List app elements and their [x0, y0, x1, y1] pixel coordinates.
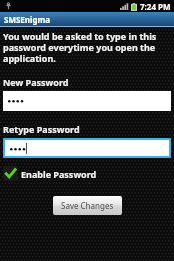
staticText: 7:24 PM — [140, 1, 171, 12]
staticText: SMSEnigma — [4, 14, 51, 25]
button[interactable]: Retype Password — [5, 140, 169, 156]
staticText: Retype Password — [3, 123, 80, 135]
staticText: Save Changes — [61, 200, 114, 211]
staticText: You would be asked to type in this passw… — [3, 30, 171, 64]
button[interactable]: New Password — [3, 91, 171, 111]
button[interactable]: Enable Password — [3, 165, 97, 182]
staticText: Enable Password — [21, 168, 97, 180]
button[interactable]: Save Changes — [53, 196, 122, 215]
staticText: New Password — [3, 76, 69, 88]
